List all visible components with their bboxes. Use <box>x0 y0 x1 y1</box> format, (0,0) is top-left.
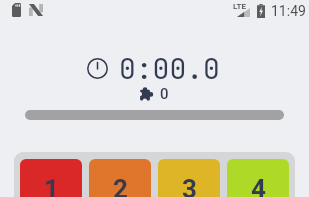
staticText: 3 <box>182 174 197 197</box>
button[interactable]: 1 <box>20 159 82 197</box>
button[interactable]: 4 <box>227 159 289 197</box>
staticText: 1 <box>44 174 59 197</box>
button[interactable]: 3 <box>158 159 220 197</box>
other: Moves <box>139 87 153 101</box>
other: Elapsed time <box>87 58 108 79</box>
staticText: 4 <box>251 174 266 197</box>
staticText: 0 <box>160 85 169 103</box>
staticText: 2 <box>113 174 128 197</box>
staticText: 0:00.0 <box>119 50 220 87</box>
staticText: 11:49 <box>271 3 306 19</box>
staticText: LTE <box>233 2 246 11</box>
button[interactable]: 2 <box>89 159 151 197</box>
